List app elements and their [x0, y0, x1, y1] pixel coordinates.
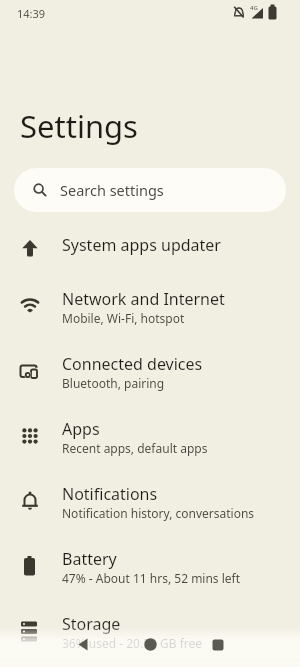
staticText: Notifications	[62, 483, 158, 505]
staticText: 47% - About 11 hrs, 52 mins left	[62, 570, 241, 586]
button[interactable]	[50, 622, 117, 667]
staticText: Bluetooth, pairing	[62, 375, 165, 391]
button[interactable]	[184, 622, 251, 667]
staticText: 14:39	[17, 6, 46, 21]
staticText: Mobile, Wi-Fi, hotspot	[62, 310, 185, 326]
staticText: Apps	[62, 418, 100, 440]
button[interactable]: Storage	[0, 598, 300, 663]
staticText: 4G	[250, 4, 258, 12]
staticText: Connected devices	[62, 353, 203, 375]
staticText: Recent apps, default apps	[62, 440, 208, 456]
button[interactable]: Search settings	[14, 168, 286, 212]
staticText: Storage	[62, 613, 121, 635]
button[interactable]: System apps updater	[0, 221, 300, 273]
staticText: 36% used - 20.50 GB free	[62, 635, 203, 651]
button[interactable]: Connected devices	[0, 338, 300, 403]
button[interactable]: Apps	[0, 403, 300, 468]
staticText: Battery	[62, 548, 117, 570]
staticText: Network and Internet	[62, 288, 225, 310]
staticText: System apps updater	[62, 234, 221, 256]
staticText: Notification history, conversations	[62, 505, 255, 521]
staticText: Settings	[20, 105, 138, 147]
staticText: Search settings	[60, 180, 164, 200]
button[interactable]: Battery	[0, 533, 300, 598]
button[interactable]: Network and Internet	[0, 273, 300, 338]
button[interactable]	[117, 622, 184, 667]
button[interactable]: Notifications	[0, 468, 300, 533]
